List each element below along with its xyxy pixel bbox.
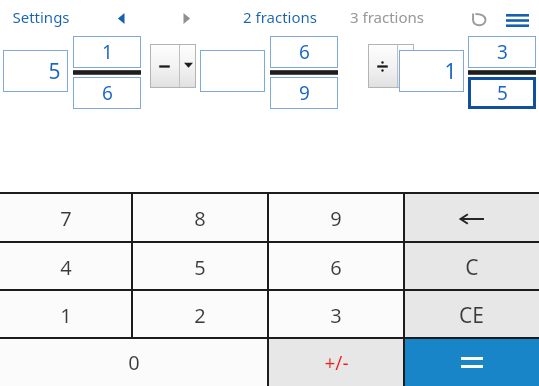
staticText: 3	[497, 39, 508, 65]
button[interactable]: +/-	[268, 339, 404, 386]
button[interactable]: 9	[270, 77, 338, 109]
button[interactable]: Undo	[465, 5, 493, 33]
button[interactable]: 6	[268, 243, 404, 291]
staticText: 6	[102, 80, 113, 106]
staticText: C	[465, 253, 479, 282]
button[interactable]: Next	[173, 5, 199, 31]
button[interactable]	[200, 50, 265, 92]
staticText: 4	[60, 254, 72, 281]
button[interactable]: 4	[0, 243, 132, 291]
button[interactable]: 5	[468, 77, 536, 109]
button[interactable]: 5	[3, 50, 68, 92]
staticText: 2 fractions	[243, 7, 317, 27]
button[interactable]: Backspace	[404, 194, 539, 243]
staticText: 9	[299, 80, 310, 106]
button[interactable]: 1	[73, 36, 141, 68]
button[interactable]: CE	[404, 291, 539, 339]
button[interactable]: 0	[0, 339, 268, 386]
button[interactable]: Equals	[404, 339, 539, 386]
staticText: 1	[444, 57, 457, 86]
staticText: 5	[194, 254, 206, 281]
button[interactable]: 7	[0, 194, 132, 243]
staticText: 3 fractions	[350, 7, 424, 27]
staticText: 5	[48, 57, 61, 86]
button[interactable]: C	[404, 243, 539, 291]
button[interactable]: 3 fractions	[346, 0, 428, 34]
button[interactable]: 3	[468, 36, 536, 68]
staticText: 8	[194, 205, 206, 232]
button[interactable]: Minus operator	[150, 44, 196, 88]
staticText: Settings	[12, 7, 70, 27]
button[interactable]: Settings	[8, 0, 74, 34]
staticText: 5	[497, 80, 508, 106]
button[interactable]: 2 fractions	[239, 0, 321, 34]
staticText: 6	[330, 254, 342, 281]
button[interactable]: 3	[268, 291, 404, 339]
button[interactable]: Previous	[108, 5, 134, 31]
button[interactable]: 8	[132, 194, 268, 243]
staticText: 0	[128, 349, 140, 376]
button[interactable]: 9	[268, 194, 404, 243]
staticText: 1	[60, 302, 72, 329]
button[interactable]: Menu	[502, 5, 532, 35]
staticText: CE	[459, 301, 484, 330]
staticText: 9	[330, 205, 342, 232]
staticText: +/-	[324, 350, 349, 376]
button[interactable]: 1	[399, 50, 464, 92]
button[interactable]: 5	[132, 243, 268, 291]
staticText: 7	[60, 205, 72, 232]
staticText: 3	[330, 302, 342, 329]
staticText: 2	[194, 302, 206, 329]
button[interactable]: 6	[270, 36, 338, 68]
button[interactable]: Divide operator	[368, 44, 414, 88]
staticText: 1	[102, 39, 113, 65]
button[interactable]: 1	[0, 291, 132, 339]
button[interactable]: 6	[73, 77, 141, 109]
button[interactable]: 2	[132, 291, 268, 339]
staticText: 6	[299, 39, 310, 65]
